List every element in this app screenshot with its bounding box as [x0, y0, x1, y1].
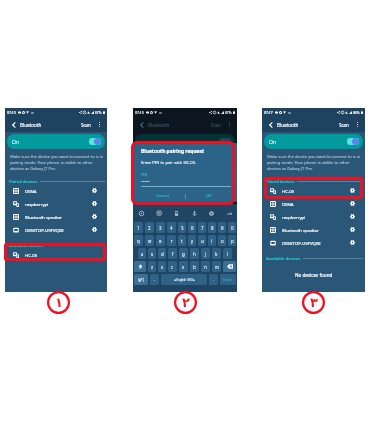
button[interactable]: Device settings: [349, 200, 356, 207]
button[interactable]: Keyboard tool: [172, 209, 180, 217]
staticText: Bluetooth: [20, 122, 42, 128]
button[interactable]: 0: [228, 222, 236, 233]
staticText: Bluetooth: [277, 122, 299, 128]
button[interactable]: Device settings: [349, 213, 356, 220]
button[interactable]: Scan: [338, 120, 350, 130]
button[interactable]: 6: [188, 222, 196, 233]
button[interactable]: Keyboard tool: [190, 209, 198, 217]
button[interactable]: b: [190, 261, 199, 272]
button[interactable]: raspberrypi: [262, 210, 365, 223]
button[interactable]: i: [208, 235, 216, 246]
button[interactable]: m: [212, 261, 221, 272]
button[interactable]: Bluetooth speaker: [5, 210, 107, 223]
button[interactable]: Done: [220, 274, 236, 285]
staticText: Bluetooth pairing request: [141, 148, 205, 155]
button[interactable]: DENA: [262, 197, 365, 210]
button[interactable]: 9: [218, 222, 226, 233]
button[interactable]: OK: [186, 191, 231, 201]
button[interactable]: Keyboard tool: [225, 209, 233, 217]
button[interactable]: y: [188, 235, 196, 246]
button[interactable]: ,: [150, 274, 159, 285]
staticText: Enter PIN to pair with HC-05.: [141, 160, 197, 166]
button[interactable]: HC-05: [262, 184, 365, 197]
button[interactable]: j: [201, 248, 210, 259]
button[interactable]: 1: [134, 222, 143, 233]
button[interactable]: 4: [167, 222, 176, 233]
staticText: Make sure the device you want to connect…: [267, 154, 363, 172]
button[interactable]: d: [158, 248, 166, 259]
staticText: m: [215, 264, 219, 270]
button[interactable]: Keyboard tool: [207, 209, 215, 217]
button[interactable]: More options: [95, 120, 104, 129]
button[interactable]: On: [264, 134, 363, 149]
button[interactable]: l: [223, 248, 232, 259]
button[interactable]: 7: [198, 222, 206, 233]
button[interactable]: Device settings: [91, 213, 98, 220]
button[interactable]: e: [156, 235, 165, 246]
staticText: j: [205, 251, 207, 257]
staticText: !#1: [138, 277, 145, 283]
button[interactable]: On: [135, 134, 235, 149]
button[interactable]: f: [168, 248, 177, 259]
staticText: y: [191, 238, 194, 244]
button[interactable]: Scan: [210, 120, 222, 130]
button[interactable]: q: [134, 235, 143, 246]
staticText: 2: [148, 225, 151, 231]
button[interactable]: x: [158, 261, 166, 272]
button[interactable]: h: [190, 248, 199, 259]
button[interactable]: Cancel: [141, 191, 185, 201]
button[interactable]: Device settings: [349, 239, 356, 246]
button[interactable]: ◂ English (UK) ▸: [161, 274, 207, 285]
staticText: 67%: [225, 111, 232, 115]
button[interactable]: Scan: [80, 120, 92, 130]
button[interactable]: Back: [136, 119, 147, 130]
button[interactable]: g: [179, 248, 188, 259]
button[interactable]: DENA: [5, 184, 107, 197]
button[interactable]: Bluetooth speaker: [262, 223, 365, 236]
button[interactable]: !#1: [134, 274, 148, 285]
staticText: e: [159, 238, 162, 244]
button[interactable]: On: [7, 134, 105, 149]
button[interactable]: Back: [8, 119, 19, 130]
button[interactable]: More options: [353, 120, 362, 129]
button[interactable]: 8: [208, 222, 216, 233]
staticText: s: [151, 251, 154, 257]
button[interactable]: t: [178, 235, 186, 246]
button[interactable]: Shift: [134, 261, 146, 272]
button[interactable]: a: [138, 248, 146, 259]
button[interactable]: k: [212, 248, 221, 259]
button[interactable]: 5: [178, 222, 186, 233]
button[interactable]: Keyboard tool: [155, 209, 163, 217]
button[interactable]: r: [167, 235, 176, 246]
button[interactable]: HC-05: [5, 248, 107, 261]
button[interactable]: n: [201, 261, 210, 272]
button[interactable]: DESKTOP-U9FVQ0E: [5, 223, 107, 236]
button[interactable]: raspberrypi: [5, 197, 107, 210]
staticText: Bluetooth: [148, 122, 170, 128]
staticText: x: [161, 264, 164, 270]
button[interactable]: Back: [265, 119, 276, 130]
button[interactable]: 2: [145, 222, 154, 233]
staticText: Done: [223, 277, 233, 282]
button[interactable]: w: [145, 235, 154, 246]
button[interactable]: More options: [225, 120, 234, 129]
staticText: r: [171, 238, 173, 244]
button[interactable]: 3: [156, 222, 165, 233]
button[interactable]: Device settings: [349, 187, 356, 194]
button[interactable]: Device settings: [91, 187, 98, 194]
button[interactable]: Device settings: [349, 226, 356, 233]
button[interactable]: p: [228, 235, 236, 246]
button[interactable]: u: [198, 235, 206, 246]
button[interactable]: s: [148, 248, 156, 259]
button[interactable]: DESKTOP-U9FVQ0E: [262, 236, 365, 249]
button[interactable]: c: [168, 261, 177, 272]
button[interactable]: .: [209, 274, 218, 285]
button[interactable]: z: [148, 261, 156, 272]
button[interactable]: Device settings: [91, 226, 98, 233]
button[interactable]: Device settings: [91, 200, 98, 207]
button[interactable]: o: [218, 235, 226, 246]
button[interactable]: Keyboard tool: [137, 209, 145, 217]
button[interactable]: v: [179, 261, 188, 272]
staticText: n: [204, 264, 207, 270]
button[interactable]: Backspace: [223, 261, 236, 272]
